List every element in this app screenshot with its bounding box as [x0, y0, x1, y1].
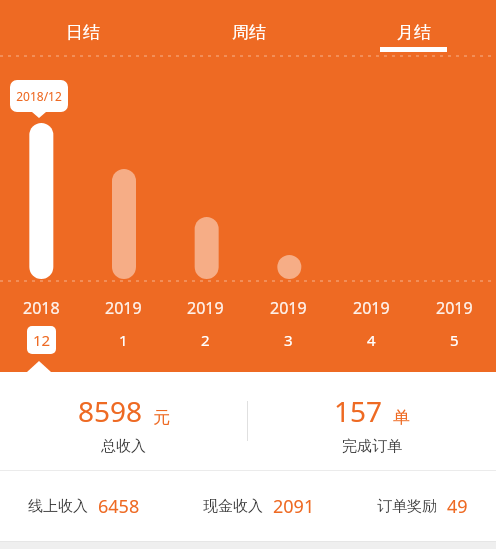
staticText: 3 — [284, 330, 293, 350]
button[interactable]: 线上收入 — [28, 494, 140, 519]
button[interactable]: 3 — [274, 326, 303, 354]
button[interactable]: 12 — [27, 326, 56, 354]
button[interactable]: 5 — [440, 326, 469, 354]
staticText: 2091 — [273, 494, 315, 519]
staticText: 2019 — [353, 297, 390, 319]
staticText: 日结 — [66, 22, 100, 43]
button[interactable]: 日结 — [0, 8, 166, 56]
button[interactable]: 现金收入 — [203, 494, 315, 519]
staticText: 2018/12 — [10, 88, 68, 104]
button[interactable]: 月结 — [331, 8, 496, 56]
button[interactable]: 订单奖励 — [377, 494, 468, 519]
staticText: 2018 — [23, 297, 60, 319]
staticText: 49 — [447, 494, 468, 519]
button[interactable]: 157 — [248, 377, 496, 470]
staticText: 线上收入 — [28, 497, 88, 516]
staticText: 2019 — [436, 297, 473, 319]
staticText: 单 — [393, 407, 410, 428]
staticText: 6458 — [98, 494, 140, 519]
staticText: 2 — [201, 330, 210, 350]
button[interactable]: 2 — [191, 326, 220, 354]
staticText: 订单奖励 — [377, 497, 437, 516]
staticText: 8598 — [78, 392, 143, 430]
button[interactable]: 周结 — [166, 8, 331, 56]
staticText: 12 — [33, 330, 51, 350]
button[interactable]: 4 — [357, 326, 386, 354]
staticText: 157 — [334, 392, 383, 430]
staticText: 周结 — [232, 22, 266, 43]
staticText: 总收入 — [101, 437, 146, 456]
staticText: 现金收入 — [203, 497, 263, 516]
button[interactable]: 1 — [109, 326, 138, 354]
staticText: 5 — [450, 330, 459, 350]
staticText: 完成订单 — [342, 437, 402, 456]
staticText: 4 — [367, 330, 376, 350]
staticText: 2019 — [270, 297, 307, 319]
staticText: 1 — [119, 330, 128, 350]
staticText: 元 — [153, 407, 170, 428]
button[interactable]: 8598 — [0, 377, 247, 470]
staticText: 2019 — [105, 297, 142, 319]
staticText: 月结 — [397, 22, 431, 43]
staticText: 2019 — [187, 297, 224, 319]
